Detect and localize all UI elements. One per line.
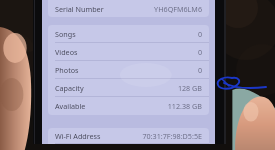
staticText: Wi-Fi Address [55, 131, 101, 141]
staticText: Serial Number [55, 4, 104, 14]
staticText: 0 [197, 65, 202, 75]
button[interactable]: Wi-Fi Address [48, 128, 209, 144]
button[interactable]: Songs [48, 25, 209, 43]
button[interactable]: Serial Number [48, 1, 209, 17]
staticText: YH6QFM6LM6 [154, 4, 202, 14]
staticText: 0 [197, 29, 202, 39]
staticText: 128 GB [177, 83, 202, 93]
staticText: 0 [197, 47, 202, 57]
staticText: Videos [55, 47, 78, 57]
button[interactable]: Photos [48, 61, 209, 79]
button[interactable]: Available [48, 97, 209, 115]
button[interactable]: Capacity callout arrow [214, 72, 270, 94]
staticText: Available [55, 101, 86, 111]
staticText: 70:31:7F:98:D5:5E [142, 131, 202, 141]
staticText: Capacity [55, 83, 84, 93]
staticText: Photos [55, 65, 79, 75]
staticText: Songs [55, 29, 76, 39]
staticText: 112.38 GB [167, 101, 202, 111]
button[interactable]: Capacity [48, 79, 209, 97]
button[interactable]: Videos [48, 43, 209, 61]
